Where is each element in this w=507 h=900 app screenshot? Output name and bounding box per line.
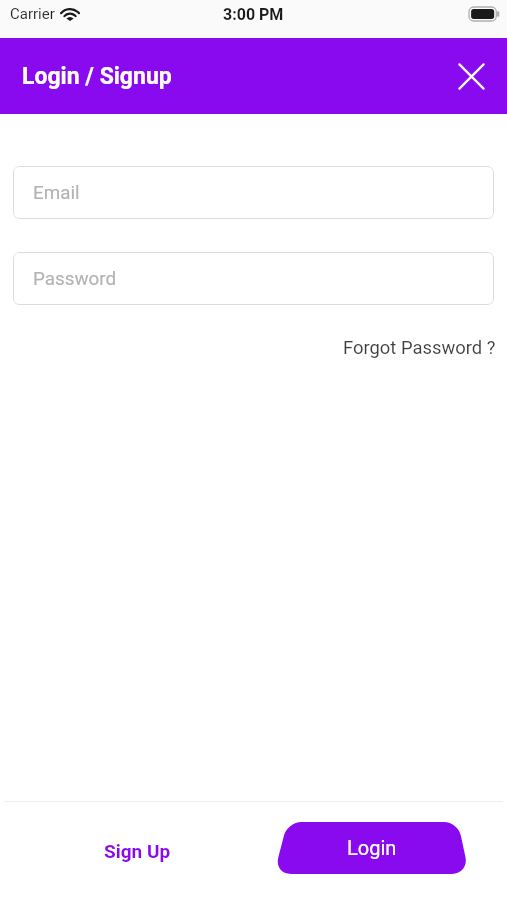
button[interactable]: Forgot Password ? — [330, 332, 507, 364]
staticText: Login / Signup — [22, 63, 172, 90]
button[interactable]: Password — [13, 252, 494, 305]
staticText: Password — [33, 268, 117, 290]
button[interactable]: Login — [274, 822, 469, 874]
staticText: Forgot Password ? — [343, 337, 496, 359]
button[interactable]: Sign Up — [94, 831, 181, 871]
button[interactable]: Email — [13, 166, 494, 219]
staticText: Login — [347, 836, 397, 859]
staticText: 3:00 PM — [223, 5, 284, 24]
button[interactable]: Close — [448, 53, 494, 99]
staticText: Carrier — [10, 5, 55, 23]
staticText: Email — [33, 182, 80, 204]
staticText: Sign Up — [104, 840, 171, 862]
